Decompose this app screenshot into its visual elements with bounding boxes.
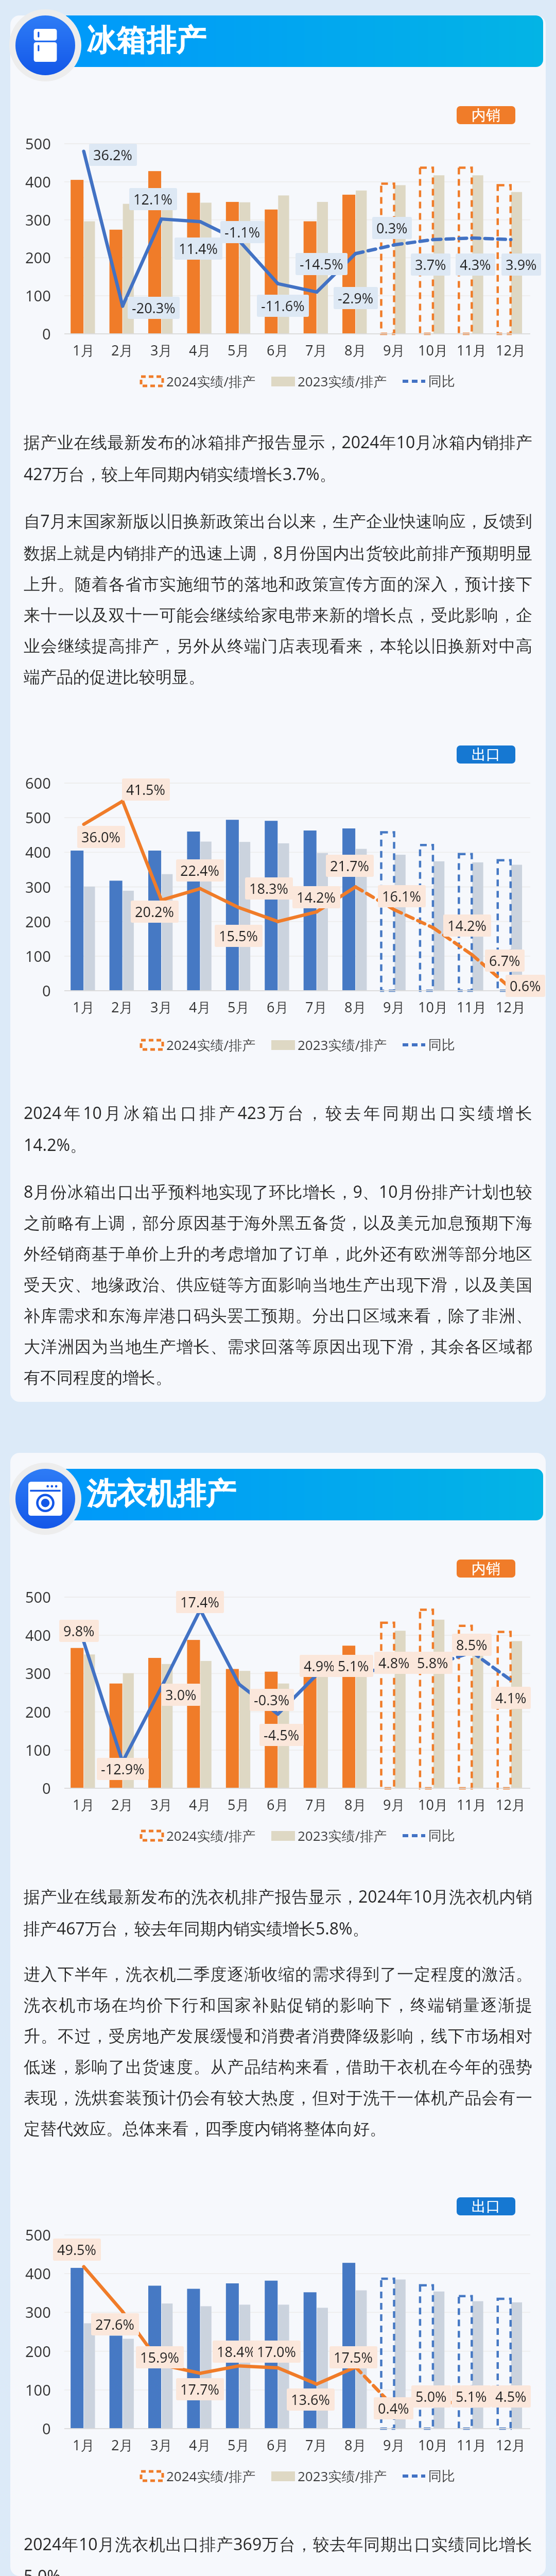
staticText: -11.6% [261, 296, 305, 315]
staticText: 4.3% [460, 255, 491, 274]
staticText: 6.7% [489, 951, 520, 970]
staticText: 300 [25, 1663, 51, 1683]
staticText: 4月 [189, 2435, 211, 2454]
staticText: 8月 [344, 997, 367, 1016]
staticText: 3.0% [165, 1685, 197, 1704]
staticText: 49.5% [57, 2240, 97, 2259]
staticText: 2024实绩/排产 [166, 2467, 256, 2485]
staticText: 500 [25, 1587, 51, 1607]
staticText: 6月 [267, 341, 289, 360]
staticText: 5.0% [415, 2387, 447, 2406]
staticText: 4.8% [378, 1653, 410, 1672]
staticText: 27.6% [95, 2315, 135, 2334]
staticText: 5月 [228, 2435, 250, 2454]
staticText: 2月 [111, 2435, 133, 2454]
staticText: 500 [25, 2225, 51, 2245]
staticText: 12月 [496, 997, 526, 1016]
staticText: 12月 [496, 2435, 526, 2454]
staticText: 600 [25, 773, 51, 793]
button[interactable]: 内销 [457, 106, 515, 124]
staticText: 同比 [428, 1037, 455, 1054]
staticText: 17.0% [257, 2342, 297, 2361]
staticText: 2023实绩/排产 [298, 1826, 387, 1845]
staticText: 3月 [150, 997, 172, 1016]
staticText: 9月 [383, 341, 405, 360]
staticText: 2月 [111, 341, 133, 360]
staticText: 400 [25, 2263, 51, 2283]
staticText: 5月 [228, 997, 250, 1016]
staticText: 6月 [267, 2435, 289, 2454]
staticText: 12月 [496, 1795, 526, 1814]
staticText: 2月 [111, 997, 133, 1016]
staticText: 11.4% [179, 239, 218, 258]
staticText: 14.2% [447, 916, 487, 935]
staticText: 400 [25, 1625, 51, 1645]
staticText: 0 [42, 324, 51, 344]
staticText: 17.5% [334, 2348, 373, 2367]
staticText: 100 [25, 285, 51, 306]
staticText: 9.8% [63, 1621, 95, 1640]
staticText: 36.0% [81, 827, 121, 846]
staticText: 18.3% [249, 879, 289, 898]
staticText: 8月 [344, 1795, 367, 1814]
staticText: 3.7% [415, 255, 446, 274]
staticText: -4.5% [264, 1725, 300, 1744]
staticText: -2.9% [338, 289, 374, 308]
staticText: 出口 [472, 745, 500, 764]
staticText: 据产业在线最新发布的洗衣机排产报告显示，2024年10月洗衣机内销排产467万台… [24, 1885, 532, 1940]
staticText: 36.2% [93, 145, 133, 164]
staticText: -12.9% [101, 1759, 145, 1778]
staticText: 2024年10月洗衣机出口排产369万台，较去年同期出口实绩同比增长5.0%。 [24, 2533, 532, 2576]
staticText: 10月 [418, 341, 448, 360]
staticText: 9月 [383, 1795, 405, 1814]
button[interactable]: 洗衣机 [15, 1469, 75, 1529]
staticText: 3月 [150, 2435, 172, 2454]
staticText: 同比 [428, 2468, 455, 2485]
staticText: 12月 [496, 341, 526, 360]
staticText: 15.9% [140, 2348, 180, 2367]
button[interactable]: 冰箱 [15, 15, 75, 75]
staticText: 41.5% [126, 780, 166, 799]
staticText: 2024实绩/排产 [166, 1036, 256, 1054]
staticText: 据产业在线最新发布的冰箱排产报告显示，2024年10月冰箱内销排产427万台，较… [24, 431, 532, 485]
staticText: 3月 [150, 1795, 172, 1814]
staticText: 400 [25, 842, 51, 862]
staticText: 自7月末国家新版以旧换新政策出台以来，生产企业快速响应，反馈到数据上就是内销排产… [24, 510, 532, 687]
button[interactable]: 出口 [457, 2197, 515, 2215]
staticText: -14.5% [300, 255, 343, 274]
staticText: 21.7% [330, 856, 370, 875]
staticText: 17.7% [180, 2380, 220, 2399]
staticText: 200 [25, 247, 51, 267]
staticText: 7月 [305, 341, 327, 360]
staticText: 1月 [73, 997, 95, 1016]
staticText: 8月 [344, 341, 367, 360]
staticText: 2023实绩/排产 [298, 2467, 387, 2485]
staticText: 100 [25, 2380, 51, 2400]
staticText: 7月 [305, 1795, 327, 1814]
staticText: 0.3% [376, 218, 408, 238]
staticText: 5.1% [338, 1656, 369, 1675]
button[interactable]: 冰箱排产 [66, 15, 543, 67]
button[interactable]: 洗衣机排产 [66, 1469, 543, 1520]
staticText: 300 [25, 877, 51, 897]
staticText: 20.2% [135, 902, 175, 921]
staticText: 500 [25, 133, 51, 154]
staticText: 2月 [111, 1795, 133, 1814]
staticText: 300 [25, 2302, 51, 2322]
button[interactable]: 内销 [457, 1560, 515, 1578]
staticText: 1月 [73, 1795, 95, 1814]
staticText: 4月 [189, 341, 211, 360]
staticText: 300 [25, 210, 51, 230]
staticText: 4.9% [304, 1656, 335, 1675]
staticText: 0 [42, 1778, 51, 1798]
staticText: 3月 [150, 341, 172, 360]
staticText: 11月 [457, 2435, 486, 2454]
staticText: 0 [42, 980, 51, 1001]
staticText: -20.3% [132, 298, 176, 317]
staticText: 8月份冰箱出口出乎预料地实现了环比增长，9、10月份排产计划也较之前略有上调，部… [24, 1180, 532, 1388]
staticText: 100 [25, 946, 51, 966]
staticText: 11月 [457, 341, 486, 360]
staticText: 洗衣机排产 [86, 1475, 236, 1513]
staticText: 7月 [305, 2435, 327, 2454]
button[interactable]: 出口 [457, 745, 515, 764]
